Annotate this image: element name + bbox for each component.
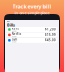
staticText: $45.00 — [45, 38, 56, 42]
staticText: Track every bill — [12, 3, 51, 10]
staticText: Monthly — [12, 30, 17, 32]
staticText: Gym — [12, 38, 17, 41]
staticText: Monthly — [12, 36, 17, 38]
staticText: Bills — [7, 22, 15, 28]
staticText: $1,200 — [45, 28, 56, 31]
staticText: Rent — [12, 27, 19, 30]
staticText: Monthly — [12, 41, 17, 43]
staticText: in one simple place — [14, 10, 49, 15]
button[interactable]: Netflix — [7, 32, 57, 37]
staticText: 9:41 — [7, 21, 10, 22]
staticText: $15.99 — [45, 33, 56, 37]
button[interactable]: Rent — [7, 27, 57, 32]
staticText: Netflix — [12, 32, 21, 36]
button[interactable]: Gym — [7, 38, 57, 43]
